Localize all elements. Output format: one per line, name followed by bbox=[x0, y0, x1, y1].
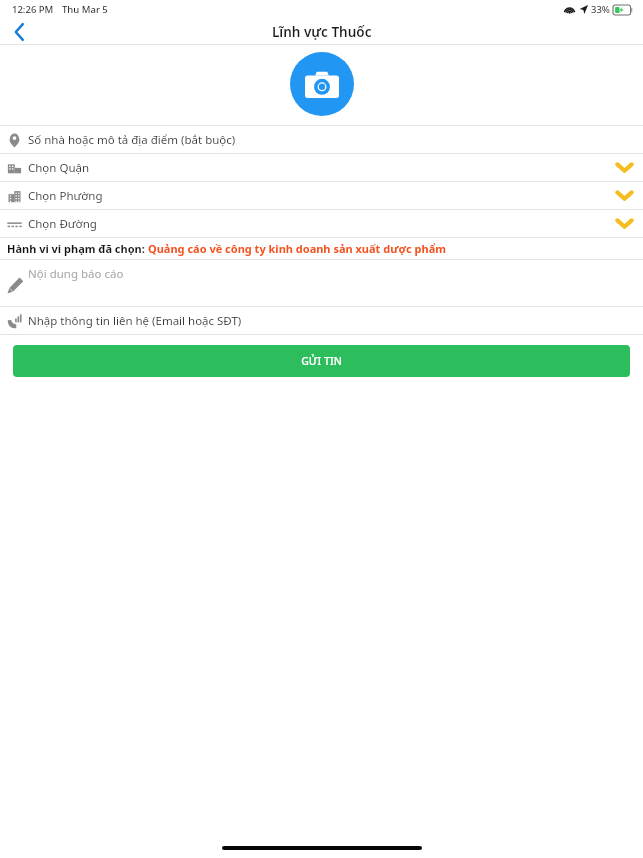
button[interactable]: Chọn Quận bbox=[0, 154, 643, 181]
staticText: 33% bbox=[591, 3, 610, 16]
staticText: Quảng cáo về công ty kinh doanh sản xuất… bbox=[148, 241, 446, 256]
staticText: Chọn Đường bbox=[28, 216, 97, 232]
staticText: Thu Mar 5 bbox=[62, 3, 108, 16]
staticText: Chọn Phường bbox=[28, 188, 103, 204]
staticText: Nội dung báo cáo bbox=[28, 266, 124, 282]
button[interactable]: Back bbox=[0, 18, 38, 45]
staticText: Hành vi vi phạm đã chọn: bbox=[7, 241, 148, 256]
staticText: Nhập thông tin liên hệ (Email hoặc SĐT) bbox=[28, 313, 242, 329]
staticText: GỬI TIN bbox=[301, 354, 342, 368]
button[interactable]: Hành vi vi phạm đã chọn: bbox=[0, 238, 643, 259]
button[interactable]: Take photo bbox=[290, 52, 354, 116]
staticText: 12:26 PM bbox=[12, 3, 54, 16]
button[interactable]: Chọn Đường bbox=[0, 210, 643, 237]
staticText: Lĩnh vực Thuốc bbox=[272, 23, 372, 41]
button[interactable]: Chọn Phường bbox=[0, 182, 643, 209]
staticText: Số nhà hoặc mô tả địa điểm (bắt buộc) bbox=[28, 132, 236, 148]
button[interactable]: Số nhà hoặc mô tả địa điểm (bắt buộc) bbox=[0, 126, 643, 153]
button[interactable]: GỬI TIN bbox=[13, 345, 630, 377]
button[interactable]: Nhập thông tin liên hệ (Email hoặc SĐT) bbox=[0, 307, 643, 334]
button[interactable]: Nội dung báo cáo bbox=[0, 260, 643, 306]
staticText: Chọn Quận bbox=[28, 160, 90, 176]
